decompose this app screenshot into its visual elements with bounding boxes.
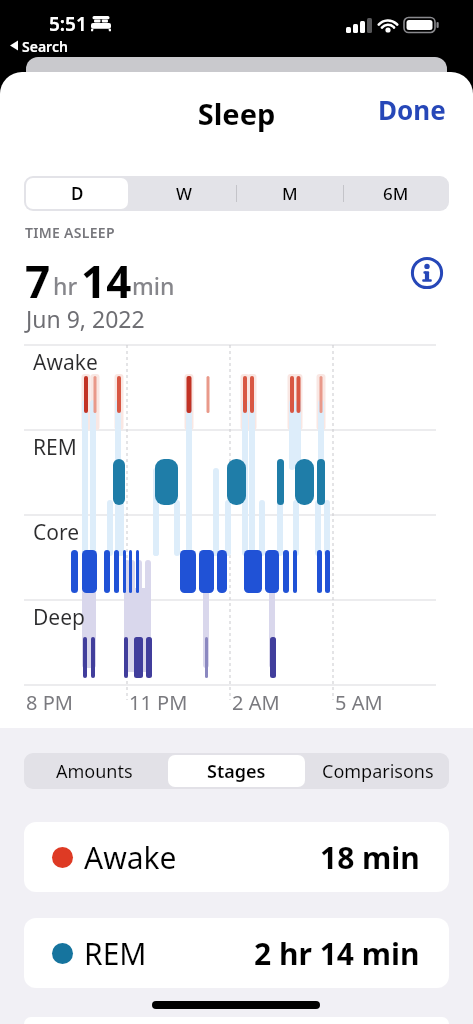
staticText: 2 hr 14 min xyxy=(254,933,420,974)
staticText: TIME ASLEEP xyxy=(25,223,115,242)
button[interactable]: D xyxy=(24,176,131,211)
staticText: Stages xyxy=(207,759,266,784)
button[interactable]: W xyxy=(131,176,237,211)
staticText: Comparisons xyxy=(322,759,434,784)
staticText: Core xyxy=(33,518,80,547)
staticText: min xyxy=(132,270,175,301)
button[interactable]: REM xyxy=(24,918,449,988)
button[interactable]: Comparisons xyxy=(307,753,449,789)
staticText: Done xyxy=(378,92,446,127)
staticText: 8 PM xyxy=(26,689,73,716)
staticText: 2 AM xyxy=(232,689,280,716)
button[interactable]: Search xyxy=(6,36,86,56)
staticText: REM xyxy=(33,433,77,462)
staticText: W xyxy=(176,182,192,205)
staticText: Jun 9, 2022 xyxy=(26,303,145,334)
button[interactable]: Stages xyxy=(165,753,307,789)
staticText: Sleep xyxy=(0,94,473,133)
staticText: M xyxy=(282,182,298,205)
button[interactable]: 6M xyxy=(343,176,449,211)
button[interactable]: Awake xyxy=(24,822,449,892)
staticText: 14 xyxy=(81,251,132,311)
button[interactable]: Amounts xyxy=(24,753,165,789)
staticText: hr xyxy=(53,270,78,301)
staticText: Amounts xyxy=(56,759,133,784)
staticText: 5:51 xyxy=(49,11,87,35)
staticText: 18 min xyxy=(320,837,420,878)
staticText: 6M xyxy=(383,182,409,205)
staticText: Awake xyxy=(84,837,177,878)
staticText: 11 PM xyxy=(129,689,188,716)
staticText: Search xyxy=(22,37,68,56)
button[interactable] xyxy=(408,254,446,292)
staticText: D xyxy=(71,182,84,205)
button[interactable]: Done xyxy=(372,88,452,130)
button[interactable]: M xyxy=(237,176,343,211)
staticText: Deep xyxy=(33,603,85,632)
staticText: 7 xyxy=(25,251,51,311)
staticText: 5 AM xyxy=(335,689,383,716)
staticText: REM xyxy=(84,933,147,974)
staticText: Awake xyxy=(33,348,98,377)
